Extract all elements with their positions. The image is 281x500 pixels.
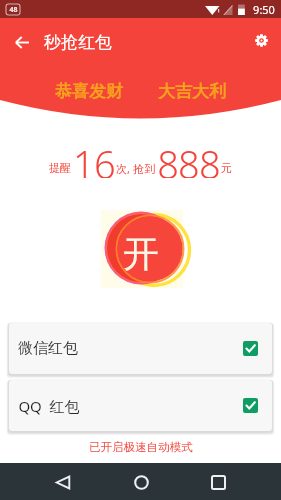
button[interactable]: Back	[47, 466, 79, 498]
staticText: 开	[123, 231, 159, 276]
button[interactable]: Settings	[246, 25, 276, 55]
button[interactable]: Recents	[202, 466, 234, 498]
staticText: QQ 红包	[18, 396, 80, 416]
button[interactable]: 开 Start	[0, 203, 281, 295]
staticText: 次, 抢到	[116, 161, 155, 176]
staticText: 微信红包	[18, 339, 78, 358]
staticText: 元	[221, 161, 232, 175]
staticText: 秒抢红包	[44, 32, 112, 53]
staticText: 提醒	[49, 161, 71, 175]
staticText: 已开启极速自动模式	[89, 440, 193, 454]
button[interactable]: Back	[8, 28, 36, 56]
staticText: 恭喜发财	[55, 81, 123, 102]
staticText: 大吉大利	[158, 81, 226, 102]
staticText: 888	[157, 138, 220, 178]
button[interactable]: Home	[125, 466, 157, 498]
button[interactable]: QQ 红包	[9, 380, 272, 431]
staticText: 16	[73, 138, 115, 178]
button[interactable]: 微信红包	[9, 323, 272, 374]
staticText: 9:50	[253, 2, 275, 17]
staticText: 48	[9, 5, 18, 15]
